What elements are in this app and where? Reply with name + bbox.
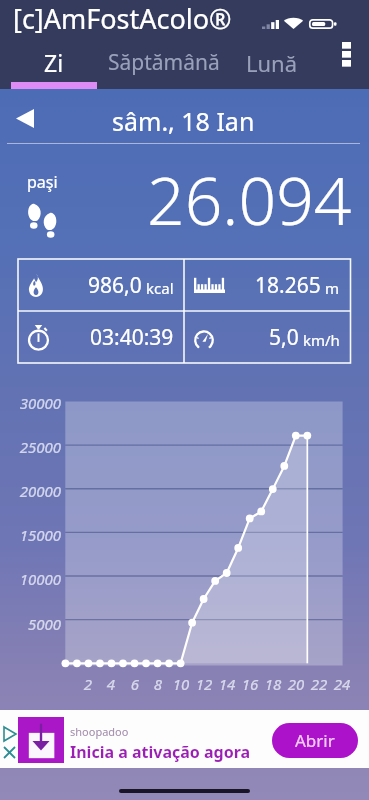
button[interactable]: 18.265 [194, 259, 340, 311]
staticText: 22 [304, 674, 334, 694]
button[interactable]: 03:40:39 [28, 311, 174, 363]
staticText: 6 [120, 674, 150, 694]
staticText: 5,0 [269, 323, 299, 352]
staticText: km/h [303, 330, 340, 350]
staticText: Abrir [295, 729, 335, 752]
staticText: sâm., 18 Ian [112, 104, 255, 138]
staticText: 18.265 [255, 271, 321, 300]
staticText: Inicia a ativação agora [70, 741, 251, 763]
button[interactable]: Zi [0, 40, 107, 89]
staticText: 26.094 [147, 154, 352, 244]
button[interactable]: Lună [220, 40, 323, 89]
staticText: 10 [166, 674, 196, 694]
button[interactable]: More options [324, 31, 369, 80]
staticText: 8 [143, 674, 173, 694]
staticText: paşi [27, 171, 58, 193]
staticText: 5000 [0, 614, 61, 634]
staticText: 25000 [0, 437, 61, 457]
button[interactable]: 5,0 [194, 311, 340, 363]
staticText: Lună [246, 48, 298, 78]
staticText: 4 [96, 674, 126, 694]
staticText: 14 [212, 674, 242, 694]
button[interactable]: Previous day [5, 98, 45, 138]
button[interactable]: Abrir [272, 723, 358, 758]
staticText: 10000 [0, 569, 61, 589]
staticText: 986,0 [88, 271, 142, 300]
staticText: 24 [327, 674, 357, 694]
staticText: shoopadoo [70, 724, 129, 739]
staticText: Zi [44, 47, 64, 78]
staticText: 20000 [0, 481, 61, 501]
staticText: 30000 [0, 393, 61, 413]
staticText: 15000 [0, 525, 61, 545]
staticText: 2 [73, 674, 103, 694]
staticText: 12 [189, 674, 219, 694]
staticText: 03:40:39 [90, 323, 174, 352]
staticText: 16 [235, 674, 265, 694]
staticText: Săptămână [108, 48, 220, 77]
button[interactable]: Săptămână [107, 40, 220, 89]
staticText: 18 [258, 674, 288, 694]
staticText: 20 [281, 674, 311, 694]
staticText: [c]AmFostAcolo® [13, 0, 232, 37]
button[interactable]: 986,0 [28, 259, 174, 311]
staticText: kcal [146, 278, 174, 298]
staticText: m [325, 278, 340, 298]
